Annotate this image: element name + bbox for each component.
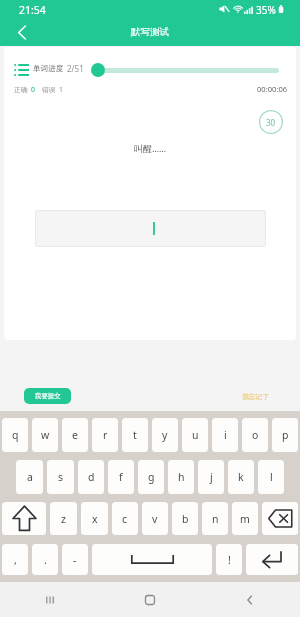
button[interactable]: l: [258, 460, 284, 494]
button[interactable]: a: [16, 460, 43, 494]
staticText: c: [122, 512, 128, 526]
staticText: 单词进度: [33, 64, 64, 74]
staticText: k: [238, 470, 244, 484]
button[interactable]: z: [50, 502, 77, 535]
staticText: 默写测试: [131, 26, 169, 38]
staticText: 叫醒……: [134, 142, 167, 154]
button[interactable]: Backspace: [262, 502, 298, 535]
button[interactable]: t: [122, 418, 148, 452]
staticText: 正确: [14, 85, 28, 94]
staticText: n: [212, 512, 219, 526]
staticText: b: [182, 512, 189, 526]
staticText: v: [152, 512, 158, 526]
staticText: 0: [31, 85, 35, 94]
staticText: .: [44, 553, 47, 567]
staticText: q: [12, 428, 19, 442]
staticText: e: [72, 428, 78, 442]
button[interactable]: Back: [200, 582, 300, 617]
staticText: 我要提交: [35, 392, 61, 400]
button[interactable]: f: [108, 460, 134, 494]
staticText: 35%: [256, 3, 276, 17]
button[interactable]: s: [47, 460, 74, 494]
button[interactable]: 我忘记了: [240, 389, 272, 404]
button[interactable]: e: [62, 418, 88, 452]
staticText: s: [58, 470, 64, 484]
button[interactable]: g: [138, 460, 164, 494]
button[interactable]: c: [112, 502, 138, 535]
staticText: d: [88, 470, 95, 484]
button[interactable]: .: [32, 544, 58, 575]
staticText: 错误: [42, 85, 56, 94]
button[interactable]: q: [2, 418, 28, 452]
staticText: !: [228, 553, 231, 567]
staticText: z: [61, 512, 66, 526]
staticText: m: [240, 512, 250, 526]
staticText: 30: [266, 117, 276, 128]
button[interactable]: !: [216, 544, 242, 575]
button[interactable]: m: [232, 502, 258, 535]
button[interactable]: Enter: [246, 544, 298, 575]
staticText: r: [103, 428, 108, 442]
button[interactable]: w: [32, 418, 58, 452]
button[interactable]: Space: [92, 544, 212, 575]
staticText: a: [27, 470, 33, 484]
button[interactable]: Home: [100, 582, 200, 617]
button[interactable]: ,: [2, 544, 28, 575]
button[interactable]: j: [198, 460, 224, 494]
button[interactable]: Shift: [2, 502, 46, 535]
staticText: f: [119, 470, 123, 484]
button[interactable]: i: [212, 418, 238, 452]
staticText: j: [210, 470, 213, 484]
button[interactable]: o: [242, 418, 268, 452]
button[interactable]: d: [78, 460, 104, 494]
button[interactable]: y: [152, 418, 178, 452]
staticText: p: [282, 428, 289, 442]
staticText: 00:00:06: [257, 84, 288, 94]
staticText: 1: [59, 85, 63, 94]
staticText: y: [162, 428, 168, 442]
button[interactable]: r: [92, 418, 118, 452]
button[interactable]: -: [62, 544, 88, 575]
button[interactable]: h: [168, 460, 194, 494]
staticText: h: [178, 470, 185, 484]
staticText: l: [270, 470, 273, 484]
staticText: 我忘记了: [242, 392, 270, 401]
button[interactable]: x: [81, 502, 108, 535]
button[interactable]: Back: [9, 20, 35, 44]
staticText: ,: [14, 553, 17, 567]
button[interactable]: Recents: [0, 582, 100, 617]
staticText: -: [73, 553, 77, 567]
button[interactable]: n: [202, 502, 228, 535]
button[interactable]: u: [182, 418, 208, 452]
staticText: u: [192, 428, 199, 442]
button[interactable]: b: [172, 502, 198, 535]
button[interactable]: k: [228, 460, 254, 494]
staticText: t: [133, 428, 137, 442]
staticText: g: [148, 470, 155, 484]
staticText: i: [224, 428, 227, 442]
staticText: o: [252, 428, 259, 442]
staticText: 21:54: [19, 3, 46, 17]
button[interactable]: p: [272, 418, 298, 452]
staticText: w: [41, 428, 50, 442]
staticText: x: [92, 512, 98, 526]
button[interactable]: v: [142, 502, 168, 535]
button[interactable]: 我要提交: [24, 388, 71, 404]
staticText: 2/51: [67, 63, 84, 74]
